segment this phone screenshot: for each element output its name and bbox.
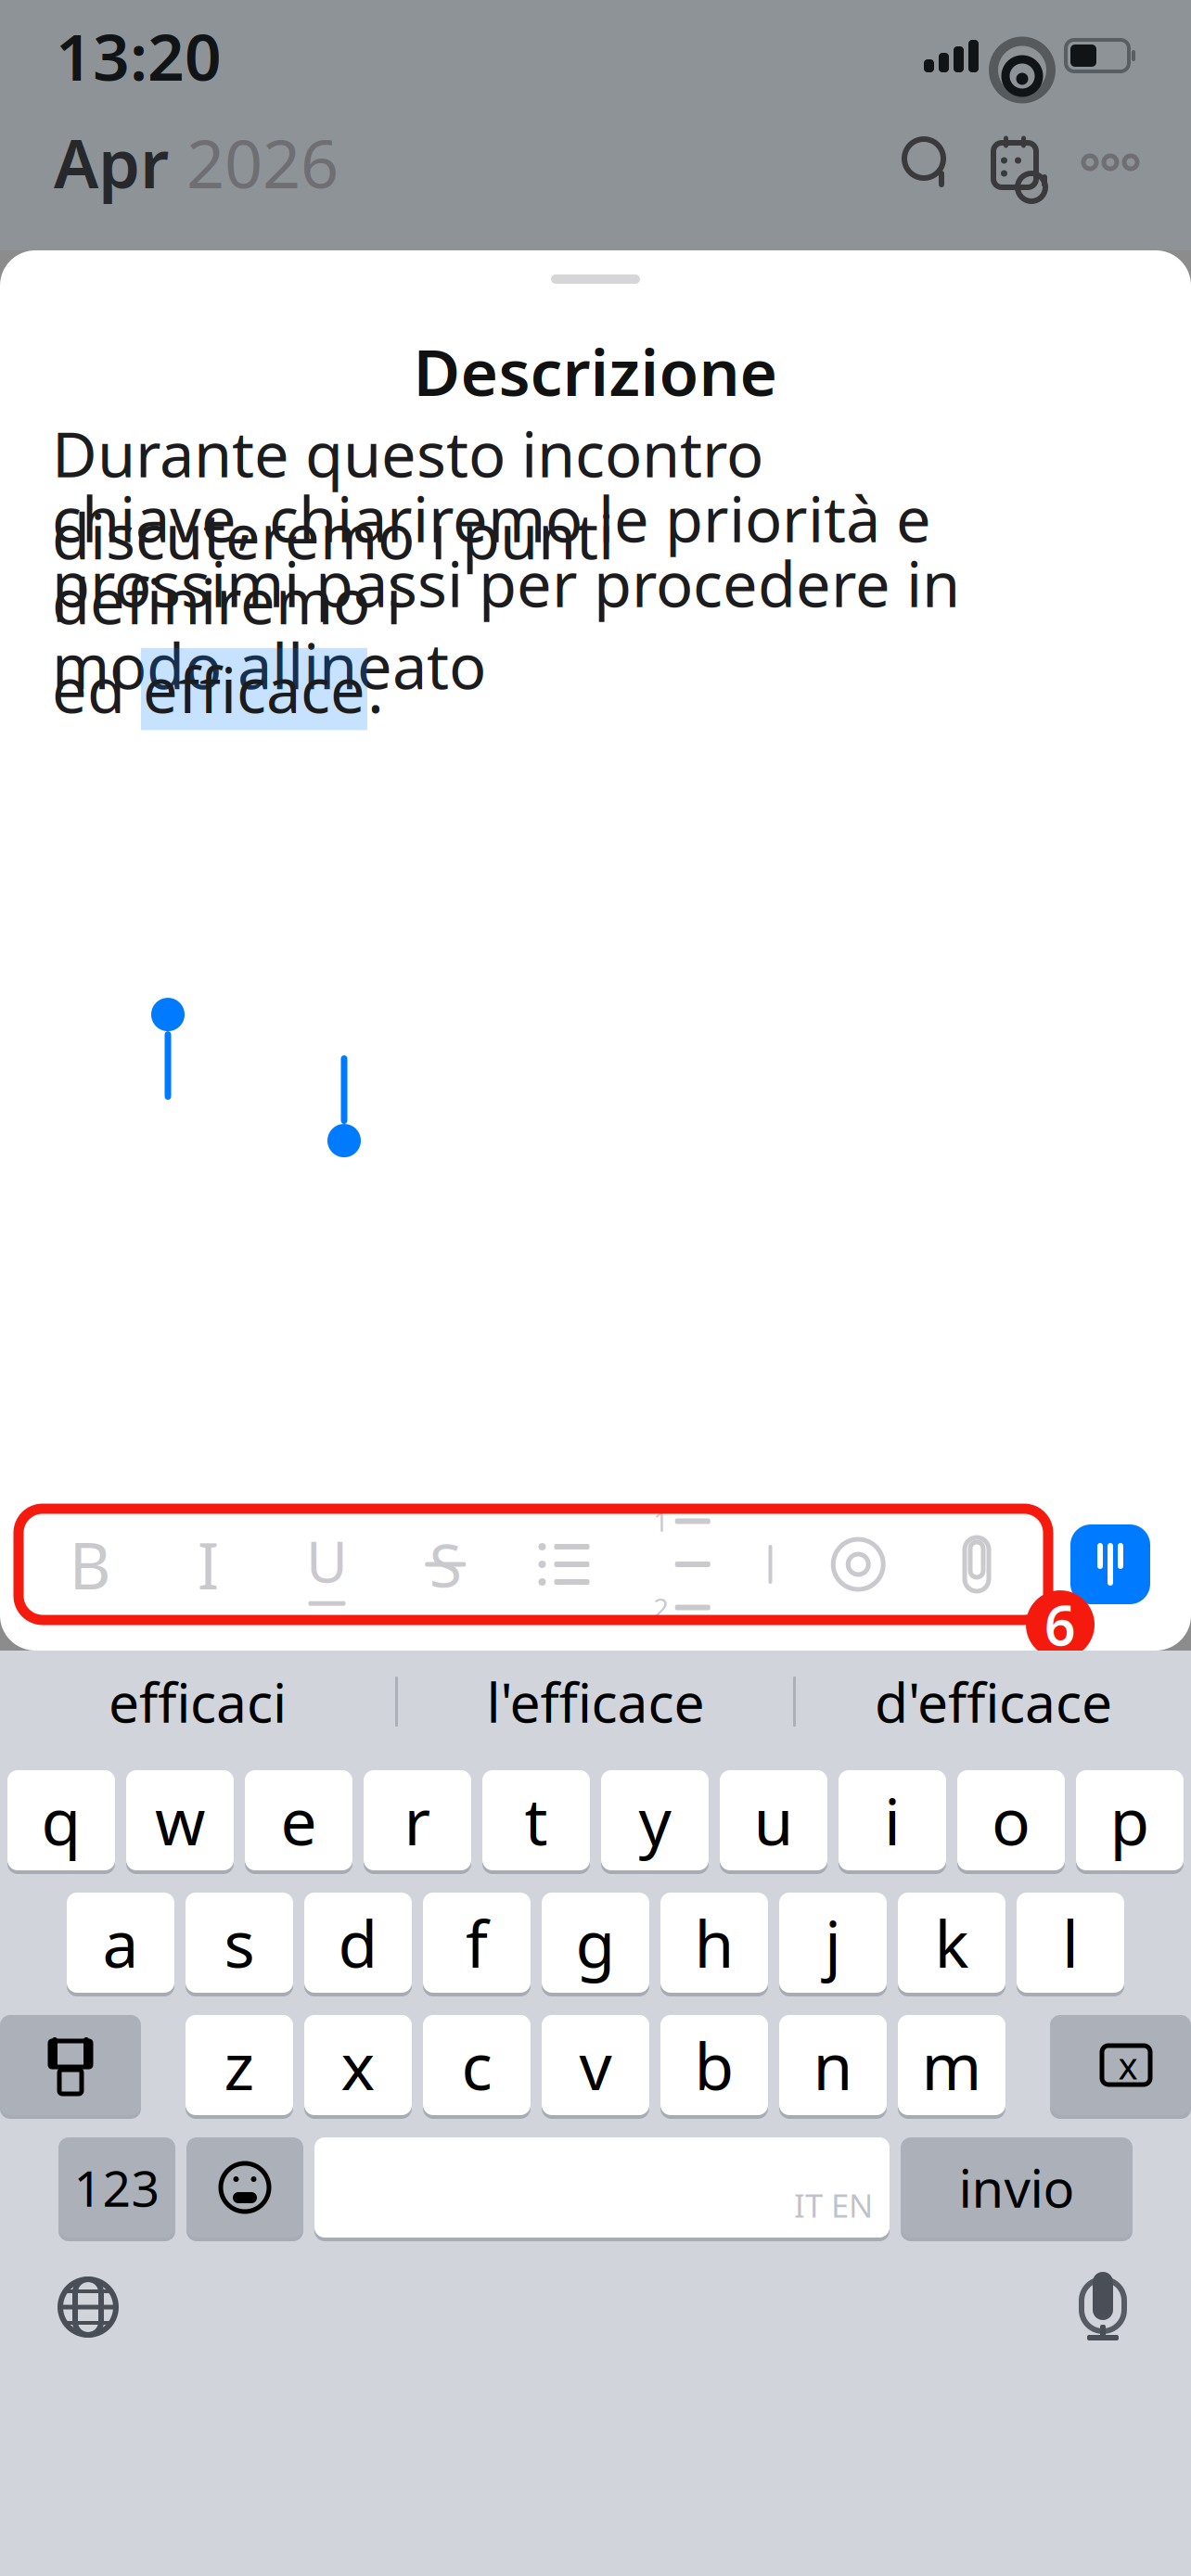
staticText: q bbox=[41, 1778, 81, 1863]
staticText: invio bbox=[959, 2153, 1075, 2222]
button[interactable]: Switch keyboard bbox=[58, 2276, 119, 2338]
staticText: Apr bbox=[54, 118, 186, 207]
staticText: U bbox=[306, 1523, 348, 1598]
button[interactable]: l bbox=[1017, 1890, 1124, 1996]
button[interactable]: Search bbox=[900, 135, 954, 189]
staticText: Durante questo incontro discuteremo i pu… bbox=[52, 412, 763, 576]
staticText: x bbox=[341, 2022, 375, 2108]
button[interactable]: Emoji bbox=[186, 2135, 303, 2240]
button[interactable]: Italic bbox=[176, 1532, 241, 1597]
button[interactable]: Bold bbox=[58, 1532, 122, 1597]
staticText: z bbox=[224, 2022, 255, 2108]
staticText: h bbox=[694, 1900, 734, 1985]
staticText: 6 bbox=[1044, 1589, 1076, 1661]
staticText: d bbox=[338, 1900, 378, 1985]
button[interactable]: d bbox=[304, 1890, 412, 1996]
staticText: c bbox=[461, 2022, 492, 2108]
staticText: d'efficace bbox=[875, 1665, 1112, 1738]
staticText: k bbox=[935, 1900, 969, 1985]
staticText: e bbox=[281, 1778, 317, 1863]
button[interactable]: Send bbox=[1070, 1524, 1150, 1604]
staticText: I bbox=[197, 1522, 220, 1607]
staticText: b bbox=[694, 2022, 734, 2108]
button[interactable]: l'efficace bbox=[398, 1655, 793, 1748]
button[interactable]: g bbox=[542, 1890, 649, 1996]
staticText: o bbox=[992, 1778, 1031, 1863]
staticText: y bbox=[639, 1778, 671, 1863]
staticText: 2026 bbox=[186, 118, 339, 207]
button[interactable]: o bbox=[957, 1767, 1065, 1873]
button[interactable]: Attach file bbox=[944, 1532, 1009, 1597]
button[interactable]: x bbox=[304, 2012, 412, 2118]
staticText: j bbox=[825, 1900, 841, 1985]
button[interactable]: f bbox=[423, 1890, 531, 1996]
staticText: i bbox=[884, 1778, 901, 1863]
staticText: g bbox=[576, 1900, 615, 1985]
button[interactable]: Dictate bbox=[1072, 2272, 1133, 2342]
button[interactable]: Strikethrough bbox=[413, 1532, 478, 1597]
button[interactable]: z bbox=[186, 2012, 293, 2118]
staticText: p bbox=[1110, 1778, 1150, 1863]
button[interactable]: Underline bbox=[295, 1532, 359, 1597]
button[interactable]: i bbox=[839, 1767, 946, 1873]
button[interactable]: Shift bbox=[0, 2012, 141, 2118]
staticText: 1 bbox=[653, 1503, 669, 1539]
staticText: a bbox=[102, 1900, 139, 1985]
staticText: efficaci bbox=[109, 1665, 287, 1738]
staticText: f bbox=[466, 1900, 488, 1985]
button[interactable]: u bbox=[720, 1767, 827, 1873]
staticText: S bbox=[429, 1525, 462, 1604]
staticText: u bbox=[754, 1778, 794, 1863]
button[interactable]: More options bbox=[1083, 135, 1137, 189]
button[interactable]: s bbox=[186, 1890, 293, 1996]
staticText: IT EN bbox=[794, 2184, 873, 2226]
button[interactable]: e bbox=[245, 1767, 352, 1873]
button[interactable]: c bbox=[423, 2012, 531, 2118]
staticText: t bbox=[525, 1778, 548, 1863]
button[interactable]: Share calendar bbox=[989, 133, 1048, 192]
staticText: prossimi passi per procedere in modo all… bbox=[52, 542, 960, 706]
staticText: l'efficace bbox=[487, 1665, 704, 1738]
button[interactable]: n bbox=[779, 2012, 887, 2118]
staticText: l bbox=[1062, 1900, 1079, 1985]
button[interactable]: 123 bbox=[58, 2135, 175, 2240]
staticText: B bbox=[69, 1522, 111, 1607]
staticText: Descrizione bbox=[413, 328, 778, 414]
button[interactable]: b bbox=[660, 2012, 768, 2118]
staticText: . bbox=[367, 648, 384, 730]
button[interactable]: y bbox=[601, 1767, 709, 1873]
button[interactable]: r bbox=[364, 1767, 471, 1873]
button[interactable]: q bbox=[7, 1767, 115, 1873]
button[interactable]: a bbox=[67, 1890, 174, 1996]
button[interactable]: j bbox=[779, 1890, 887, 1996]
button[interactable]: Delete bbox=[1050, 2012, 1191, 2118]
staticText: 2 bbox=[653, 1589, 669, 1626]
staticText: s bbox=[224, 1900, 255, 1985]
button[interactable]: Bulleted list bbox=[531, 1532, 596, 1597]
button[interactable]: p bbox=[1076, 1767, 1184, 1873]
button[interactable]: h bbox=[660, 1890, 768, 1996]
button[interactable]: k bbox=[898, 1890, 1005, 1996]
button[interactable]: v bbox=[542, 2012, 649, 2118]
staticText: v bbox=[579, 2022, 612, 2108]
button[interactable]: d'efficace bbox=[796, 1655, 1191, 1748]
button[interactable]: Space bbox=[314, 2135, 890, 2240]
button[interactable]: Mention bbox=[826, 1532, 891, 1597]
staticText: r bbox=[404, 1778, 431, 1863]
staticText: x bbox=[1118, 2040, 1138, 2090]
button[interactable]: efficaci bbox=[0, 1655, 395, 1748]
button[interactable]: t bbox=[482, 1767, 590, 1873]
staticText: ed bbox=[52, 648, 141, 730]
staticText: n bbox=[813, 2022, 853, 2108]
staticText: m bbox=[922, 2022, 982, 2108]
staticText: w bbox=[155, 1778, 205, 1863]
staticText: 123 bbox=[74, 2155, 160, 2220]
staticText: chiave, chiariremo le priorità e definir… bbox=[52, 477, 931, 641]
button[interactable]: m bbox=[898, 2012, 1005, 2118]
button[interactable]: w bbox=[126, 1767, 234, 1873]
button[interactable]: Numbered list bbox=[650, 1532, 715, 1597]
button[interactable]: invio bbox=[901, 2135, 1133, 2240]
staticText: 13:20 bbox=[56, 13, 222, 98]
staticText: efficace bbox=[143, 648, 365, 730]
